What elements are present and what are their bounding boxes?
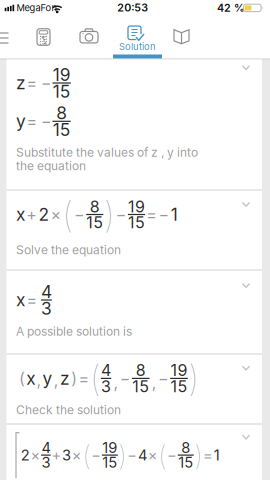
- button[interactable]: Calculator: [28, 23, 58, 51]
- staticText: x: [16, 204, 25, 225]
- staticText: 4: [41, 439, 50, 456]
- button[interactable]: Menu: [0, 24, 16, 52]
- staticText: (: [158, 439, 166, 472]
- staticText: 3: [41, 454, 50, 471]
- staticText: 1: [214, 446, 220, 464]
- staticText: (: [63, 193, 73, 236]
- button[interactable]: x: [6, 270, 262, 353]
- staticText: 15: [128, 213, 145, 232]
- staticText: 19: [53, 64, 71, 85]
- staticText: ): [194, 439, 202, 472]
- button[interactable]: z: [6, 59, 262, 189]
- staticText: Substitute the values of z , y into: [16, 145, 198, 160]
- staticText: the equation: [16, 159, 86, 173]
- staticText: 15: [102, 454, 117, 471]
- staticText: 19: [128, 197, 145, 216]
- staticText: ): [104, 193, 114, 236]
- staticText: 15: [132, 377, 149, 396]
- staticText: 8: [90, 197, 100, 216]
- staticText: =: [78, 369, 89, 388]
- staticText: 4: [138, 446, 147, 464]
- staticText: 19: [170, 361, 187, 380]
- staticText: 3: [62, 446, 71, 464]
- staticText: 15: [170, 377, 187, 396]
- staticText: −: [120, 369, 131, 388]
- staticText: x: [16, 290, 25, 310]
- staticText: −: [41, 112, 52, 131]
- staticText: −: [41, 74, 52, 92]
- staticText: 15: [53, 119, 71, 140]
- staticText: 8: [181, 439, 190, 456]
- staticText: −: [158, 205, 169, 224]
- staticText: x: [26, 368, 35, 389]
- staticText: Solve the equation: [16, 243, 121, 257]
- staticText: =: [26, 291, 37, 309]
- staticText: −: [116, 205, 127, 224]
- staticText: y: [43, 368, 53, 389]
- staticText: 3: [41, 298, 52, 318]
- staticText: z: [16, 73, 26, 93]
- staticText: 15: [178, 454, 193, 471]
- staticText: ×: [72, 446, 82, 464]
- staticText: −: [91, 446, 101, 464]
- staticText: −: [167, 446, 177, 464]
- button[interactable]: Camera: [72, 23, 106, 51]
- staticText: z: [60, 368, 70, 389]
- staticText: 20:53: [117, 1, 148, 14]
- staticText: =: [146, 205, 157, 224]
- staticText: 42 %: [217, 1, 245, 14]
- staticText: 19: [102, 439, 117, 456]
- staticText: 3: [101, 377, 111, 396]
- staticText: ,: [54, 370, 59, 389]
- staticText: −: [158, 369, 169, 388]
- staticText: Solution: [119, 41, 156, 52]
- staticText: =: [26, 112, 37, 131]
- staticText: 15: [53, 81, 71, 101]
- staticText: 1: [171, 204, 178, 225]
- staticText: 8: [56, 103, 67, 123]
- staticText: 2: [21, 446, 30, 464]
- staticText: ,: [36, 370, 41, 389]
- staticText: ×: [148, 446, 158, 464]
- staticText: −: [74, 205, 85, 224]
- staticText: =: [203, 446, 213, 464]
- staticText: ): [118, 439, 126, 472]
- staticText: 8: [136, 361, 146, 380]
- staticText: A possible solution is: [16, 324, 132, 339]
- staticText: (: [82, 439, 90, 472]
- staticText: ×: [51, 205, 62, 224]
- staticText: Check the solution: [16, 403, 121, 417]
- staticText: ): [189, 358, 198, 399]
- staticText: +: [26, 205, 37, 224]
- button[interactable]: x: [6, 190, 262, 269]
- staticText: −: [127, 446, 137, 464]
- staticText: =: [26, 74, 37, 92]
- staticText: ,: [113, 373, 118, 392]
- button[interactable]: Solution: [112, 21, 162, 58]
- staticText: y: [16, 111, 26, 131]
- staticText: 2: [38, 204, 49, 225]
- staticText: MegaFon: [16, 2, 57, 13]
- button[interactable]: 2: [6, 424, 262, 480]
- staticText: ,: [152, 373, 157, 392]
- button[interactable]: (: [6, 354, 262, 423]
- staticText: 4: [41, 281, 52, 302]
- staticText: 4: [101, 361, 111, 380]
- staticText: ): [71, 369, 77, 388]
- staticText: +: [51, 446, 61, 464]
- staticText: 15: [86, 213, 103, 232]
- staticText: (: [91, 358, 100, 399]
- staticText: (: [19, 369, 25, 388]
- staticText: ×: [30, 446, 40, 464]
- button[interactable]: Reference book: [164, 22, 198, 50]
